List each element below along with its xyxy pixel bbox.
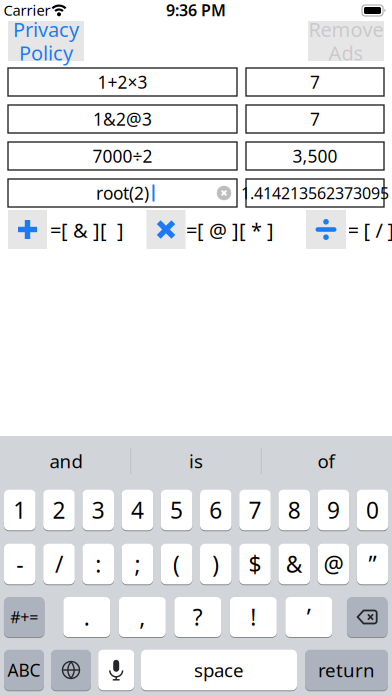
- staticText: 7: [310, 70, 320, 93]
- staticText: Carrier: [3, 0, 50, 20]
- button[interactable]: 9: [318, 489, 349, 531]
- staticText: 1: [13, 495, 26, 525]
- button[interactable]: ,: [119, 596, 166, 637]
- button[interactable]: 0: [357, 489, 388, 531]
- staticText: &: [286, 549, 303, 579]
- button[interactable]: $: [239, 543, 271, 585]
- button[interactable]: ”: [357, 543, 388, 585]
- staticText: ): [212, 549, 219, 579]
- button[interactable]: return: [305, 649, 388, 691]
- button[interactable]: 7: [246, 68, 384, 96]
- button[interactable]: ’: [285, 596, 332, 637]
- button[interactable]: ?: [174, 596, 221, 637]
- button[interactable]: &: [278, 543, 310, 585]
- staticText: =[ & ][ ]: [50, 217, 124, 243]
- button[interactable]: 7: [239, 489, 271, 531]
- staticText: #+=: [10, 606, 38, 628]
- staticText: 3: [92, 495, 105, 525]
- staticText: ;: [134, 549, 140, 579]
- button[interactable]: #+=: [4, 596, 44, 637]
- staticText: 9:36 PM: [166, 0, 226, 21]
- staticText: ’: [307, 602, 311, 632]
- staticText: Privacy: [13, 16, 79, 42]
- button[interactable]: 7000÷2: [8, 142, 237, 170]
- staticText: ,: [139, 602, 145, 632]
- button[interactable]: space: [141, 649, 297, 691]
- button[interactable]: [347, 596, 387, 637]
- button[interactable]: 1: [4, 489, 36, 531]
- staticText: 4: [131, 495, 144, 525]
- staticText: return: [318, 658, 375, 682]
- staticText: is: [189, 449, 203, 473]
- staticText: 9: [327, 495, 340, 525]
- button[interactable]: ): [200, 543, 232, 585]
- button[interactable]: is: [132, 442, 260, 480]
- button[interactable]: 2: [43, 489, 75, 531]
- staticText: = [ / ]: [347, 217, 392, 243]
- staticText: of: [317, 449, 334, 473]
- button[interactable]: [8, 210, 47, 249]
- staticText: 7: [248, 495, 261, 525]
- staticText: -: [16, 549, 23, 579]
- button[interactable]: [98, 649, 134, 691]
- staticText: 7: [310, 107, 320, 130]
- button[interactable]: and: [2, 442, 130, 480]
- button[interactable]: 1&2@3: [8, 105, 237, 133]
- staticText: 1&2@3: [93, 107, 152, 130]
- button[interactable]: Privacy: [8, 21, 84, 61]
- button[interactable]: 3,500: [246, 142, 384, 170]
- button[interactable]: ABC: [4, 649, 44, 691]
- staticText: .: [84, 602, 90, 632]
- button[interactable]: :: [82, 543, 114, 585]
- staticText: 0: [366, 495, 379, 525]
- button[interactable]: of: [262, 442, 390, 480]
- button[interactable]: 3: [82, 489, 114, 531]
- staticText: 2: [52, 495, 65, 525]
- staticText: 3,500: [292, 144, 337, 167]
- button[interactable]: 4: [122, 489, 153, 531]
- staticText: 5: [170, 495, 183, 525]
- button[interactable]: root(2): [8, 179, 237, 207]
- button[interactable]: [146, 210, 185, 249]
- staticText: :: [95, 549, 101, 579]
- button[interactable]: 7: [246, 105, 384, 133]
- staticText: 7000÷2: [92, 144, 152, 167]
- staticText: !: [250, 602, 256, 632]
- button[interactable]: 1+2×3: [8, 68, 237, 96]
- staticText: ”: [369, 549, 377, 579]
- staticText: 1.414213562373095: [241, 182, 389, 204]
- staticText: (: [173, 549, 180, 579]
- staticText: Ads: [328, 39, 363, 66]
- staticText: $: [248, 549, 261, 579]
- button[interactable]: 1.414213562373095: [246, 179, 384, 207]
- button[interactable]: 6: [200, 489, 232, 531]
- staticText: =[ @ ][ * ]: [186, 217, 274, 243]
- button[interactable]: -: [4, 543, 36, 585]
- staticText: @: [323, 549, 343, 579]
- button[interactable]: Remove: [308, 21, 384, 61]
- button[interactable]: 5: [161, 489, 192, 531]
- staticText: space: [194, 658, 244, 682]
- button[interactable]: (: [161, 543, 192, 585]
- staticText: 1+2×3: [97, 70, 147, 93]
- button[interactable]: ;: [122, 543, 153, 585]
- button[interactable]: @: [318, 543, 349, 585]
- button[interactable]: .: [63, 596, 110, 637]
- staticText: ABC: [7, 658, 40, 681]
- staticText: Remove: [308, 16, 383, 42]
- button[interactable]: [306, 210, 346, 249]
- staticText: Policy: [19, 39, 73, 66]
- staticText: root(2): [96, 181, 149, 204]
- button[interactable]: [51, 649, 91, 691]
- button[interactable]: /: [43, 543, 75, 585]
- staticText: ?: [193, 602, 203, 632]
- staticText: 8: [288, 495, 301, 525]
- staticText: 6: [209, 495, 222, 525]
- staticText: and: [49, 449, 82, 473]
- button[interactable]: [217, 186, 231, 200]
- button[interactable]: 8: [278, 489, 310, 531]
- staticText: /: [55, 549, 63, 579]
- button[interactable]: !: [230, 596, 277, 637]
